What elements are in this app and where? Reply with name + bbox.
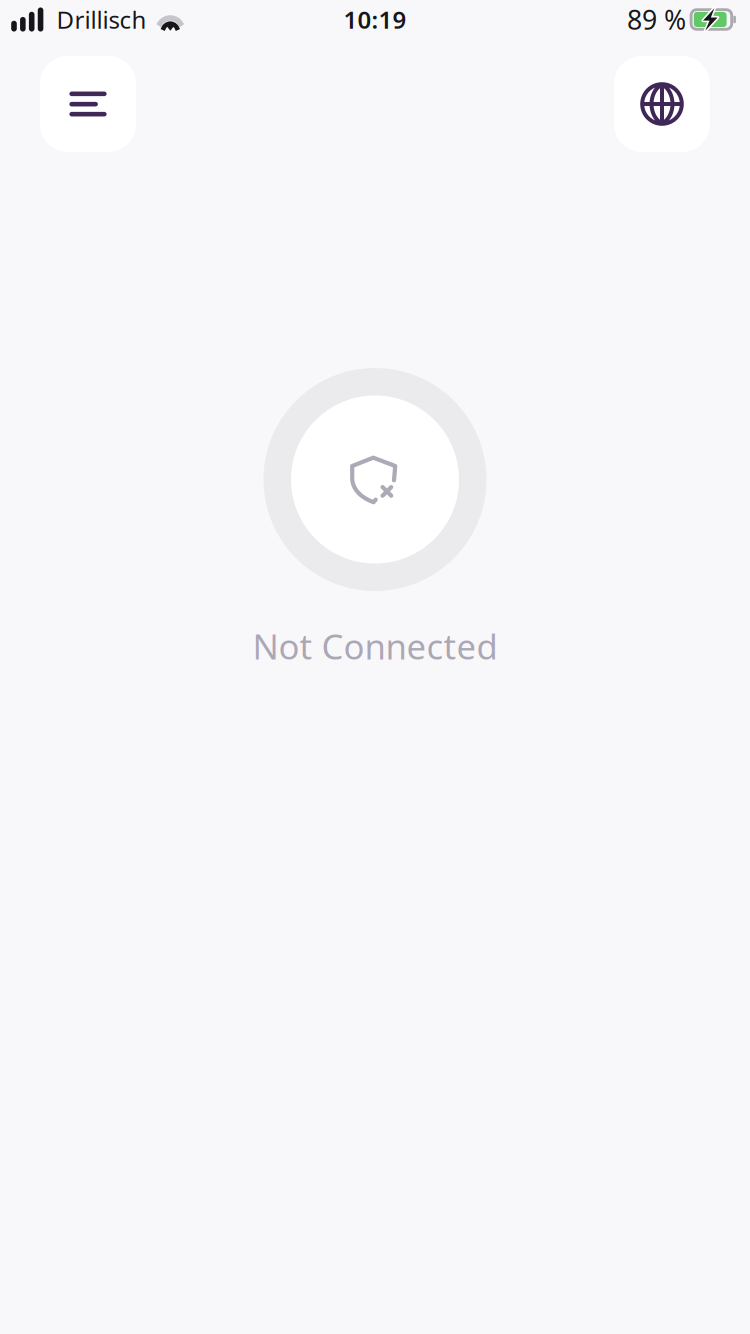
staticText: 10:19 <box>343 4 406 35</box>
button[interactable]: Connect <box>263 368 486 591</box>
button[interactable]: Menu <box>40 56 136 152</box>
button[interactable]: Select server location <box>614 56 710 152</box>
staticText: Not Connected <box>252 623 497 669</box>
staticText: Drillisch <box>56 4 146 35</box>
staticText: 89 % <box>627 2 686 37</box>
